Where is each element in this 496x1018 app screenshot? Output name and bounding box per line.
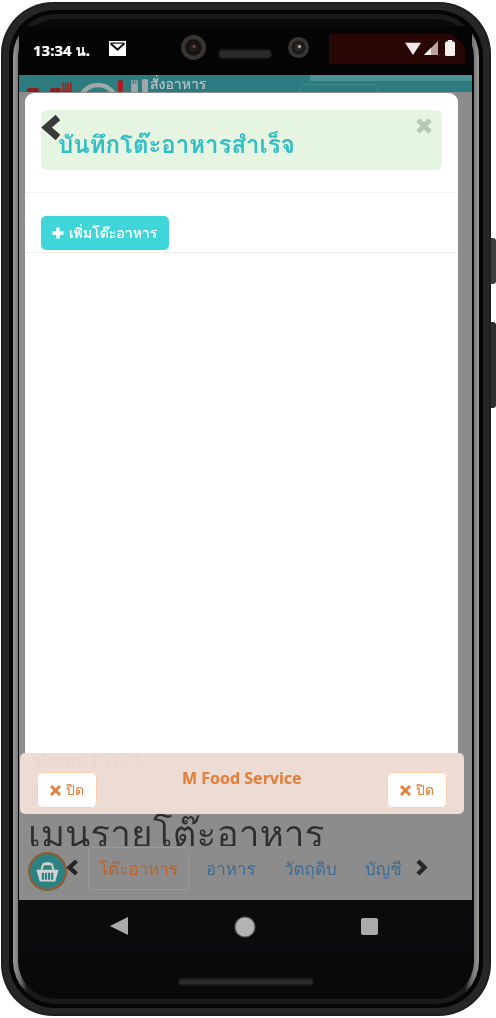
button[interactable]: บัญชี	[353, 847, 413, 890]
staticText: สั่งอาหาร	[150, 75, 207, 90]
button[interactable]: Cart	[28, 852, 67, 891]
staticText: 13:34 น.	[33, 39, 90, 63]
button[interactable]: ปิด	[387, 772, 447, 808]
staticText: เมนูรายโต๊ะอาหาร	[28, 804, 325, 863]
staticText: เพิ่มโต๊ะอาหาร	[69, 222, 158, 244]
button[interactable]: ปิด	[37, 772, 97, 808]
button[interactable]: Close	[412, 114, 436, 138]
staticText: ปิด	[66, 779, 84, 801]
staticText: บัญชี	[365, 855, 402, 882]
button[interactable]: Recents	[361, 918, 378, 935]
button[interactable]: Back	[110, 917, 128, 935]
staticText: อาหาร	[206, 855, 256, 882]
button[interactable]: โต๊ะอาหาร	[88, 847, 189, 890]
staticText: บันทึกโต๊ะอาหารสำเร็จ	[58, 125, 295, 163]
button[interactable]: วัตถุดิบ	[273, 847, 347, 890]
staticText: M Food Service	[182, 767, 302, 789]
button[interactable]: Back	[41, 112, 67, 140]
button[interactable]: Home	[235, 917, 255, 937]
staticText: วัตถุดิบ	[284, 855, 337, 882]
button[interactable]: อาหาร	[197, 847, 265, 890]
staticText: ปิด	[416, 779, 434, 801]
staticText: โต๊ะอาหาร	[99, 855, 178, 882]
button[interactable]: เพิ่มโต๊ะอาหาร	[41, 216, 169, 250]
staticText: ทั้งหมด 1 โต๊ะ !	[36, 748, 140, 773]
